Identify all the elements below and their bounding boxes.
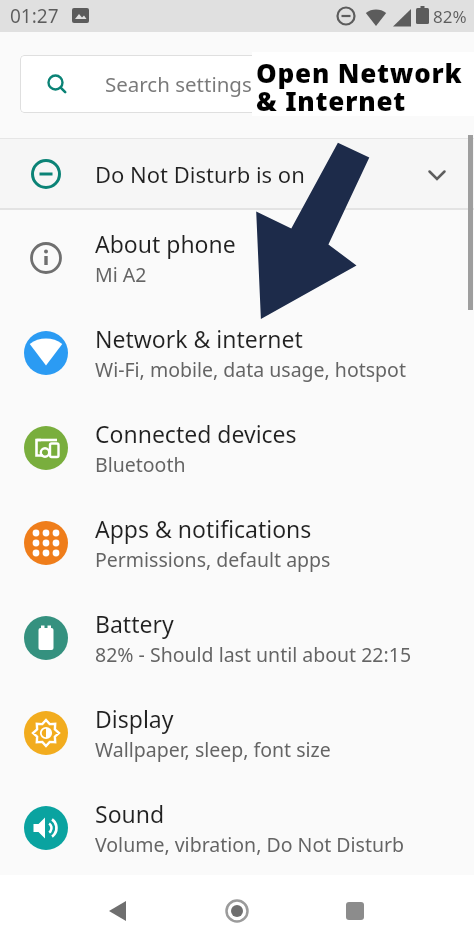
staticText: 01:27 — [10, 3, 59, 29]
staticText: Sound — [95, 798, 165, 829]
button[interactable]: Sound — [0, 780, 474, 875]
staticText: Wi-Fi, mobile, data usage, hotspot — [95, 356, 406, 383]
button[interactable]: Search settings — [20, 55, 454, 113]
staticText: 82% - Should last until about 22:15 — [95, 641, 412, 668]
staticText: Network & internet — [95, 323, 303, 354]
button[interactable]: Network & internet — [0, 305, 474, 400]
staticText: Display — [95, 703, 174, 734]
staticText: About phone — [95, 228, 236, 259]
button[interactable]: Display — [0, 685, 474, 780]
staticText: Volume, vibration, Do Not Disturb — [95, 831, 405, 858]
staticText: Connected devices — [95, 418, 297, 449]
button[interactable] — [217, 891, 257, 931]
staticText: Permissions, default apps — [95, 546, 331, 573]
staticText: Do Not Disturb is on — [95, 159, 305, 189]
staticText: Mi A2 — [95, 261, 147, 288]
button[interactable] — [0, 139, 474, 208]
staticText: Bluetooth — [95, 451, 186, 478]
staticText: Search settings — [105, 70, 252, 98]
staticText: Wallpaper, sleep, font size — [95, 736, 331, 763]
button[interactable]: Apps & notifications — [0, 495, 474, 590]
staticText: Apps & notifications — [95, 513, 312, 544]
button[interactable]: Battery — [0, 590, 474, 685]
button[interactable]: Connected devices — [0, 400, 474, 495]
button[interactable]: About phone — [0, 210, 474, 305]
staticText: Open Network & Internet — [256, 55, 463, 119]
button[interactable] — [98, 891, 138, 931]
staticText: 82% — [433, 5, 467, 28]
button[interactable] — [335, 891, 375, 931]
staticText: Battery — [95, 608, 174, 639]
